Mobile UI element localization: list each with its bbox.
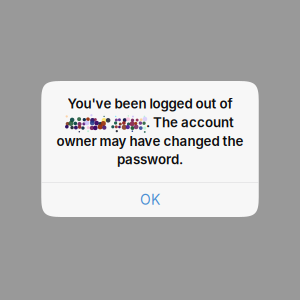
- staticText: owner may have changed the: [56, 133, 243, 149]
- staticText: OK: [140, 191, 160, 208]
- staticText: You've been logged out of: [67, 96, 232, 112]
- staticText: password.: [117, 151, 183, 167]
- button[interactable]: OK: [41, 182, 259, 217]
- staticText: . The account: [146, 114, 234, 130]
